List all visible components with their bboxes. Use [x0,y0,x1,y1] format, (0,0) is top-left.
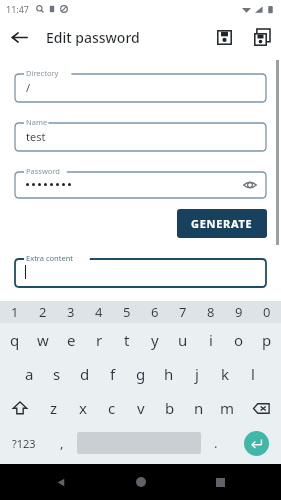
button[interactable]: g [127,357,155,391]
staticText: Edit password [46,28,205,47]
staticText: 3 [67,303,75,321]
button[interactable]: r [85,323,113,357]
button[interactable]: d [71,357,99,391]
button[interactable]: 8 [197,301,225,323]
button[interactable]: Recents [202,464,238,500]
button[interactable]: Name [14,116,267,152]
staticText: w [37,330,49,350]
staticText: 11:47 [6,3,30,15]
button[interactable]: Home [123,464,159,500]
button[interactable]: 3 [57,301,85,323]
button[interactable]: Save [205,18,243,56]
staticText: h [164,364,174,384]
button[interactable]: m [213,391,242,425]
button[interactable]: w [29,323,57,357]
button[interactable]: 5 [113,301,141,323]
button[interactable]: n [184,391,213,425]
staticText: f [110,364,116,384]
button[interactable]: Enter [231,425,281,461]
button[interactable]: o [225,323,253,357]
button[interactable]: Extra content [14,252,267,288]
button[interactable]: c [97,391,126,425]
button[interactable]: b [155,391,184,425]
staticText: r [96,330,103,350]
button[interactable]: . [201,425,231,461]
button[interactable]: Password [14,165,267,199]
staticText: , [60,434,64,452]
staticText: g [136,364,146,384]
button[interactable]: y [141,323,169,357]
button[interactable]: u [169,323,197,357]
staticText: . [214,434,218,452]
staticText: n [194,398,204,418]
staticText: 5 [123,303,131,321]
button[interactable]: a [15,357,43,391]
staticText: 6 [151,303,159,321]
staticText: ?123 [12,436,36,451]
staticText: 4 [95,303,103,321]
staticText: test [26,129,46,144]
button[interactable]: 7 [169,301,197,323]
button[interactable]: q [0,323,29,357]
button[interactable]: GENERATE [177,209,267,238]
staticText: a [25,364,34,384]
staticText: / [26,80,31,95]
staticText: x [79,398,87,418]
staticText: 9 [235,303,243,321]
staticText: 1 [11,303,19,321]
button[interactable]: v [126,391,155,425]
button[interactable]: l [239,357,267,391]
staticText: l [251,364,255,384]
staticText: e [67,330,76,350]
button[interactable]: Backspace [242,391,281,425]
button[interactable]: 0 [253,301,281,323]
button[interactable]: Directory [14,67,267,103]
staticText: Name [26,117,48,127]
button[interactable]: Shift [0,391,39,425]
staticText: b [165,398,175,418]
button[interactable]: h [155,357,183,391]
button[interactable]: Show password [241,176,259,194]
button[interactable]: 4 [85,301,113,323]
staticText: Directory [26,68,59,78]
staticText: u [178,330,188,350]
button[interactable]: e [57,323,85,357]
button[interactable]: 2 [29,301,57,323]
staticText: 7 [179,303,187,321]
button[interactable]: s [43,357,71,391]
staticText: o [234,330,244,350]
staticText: GENERATE [191,216,253,231]
staticText: q [10,330,20,350]
button[interactable]: ?123 [0,425,47,461]
staticText: Password [26,166,60,176]
button[interactable]: p [253,323,281,357]
staticText: 8 [207,303,215,321]
staticText: p [262,330,272,350]
staticText: c [108,398,116,418]
button[interactable]: z [39,391,68,425]
staticText: s [53,364,61,384]
button[interactable]: t [113,323,141,357]
button[interactable]: , [47,425,77,461]
staticText: k [221,364,230,384]
button[interactable]: 9 [225,301,253,323]
staticText: 2 [39,303,47,321]
button[interactable]: Save as [243,18,281,56]
staticText: j [195,364,199,384]
staticText: d [80,364,90,384]
button[interactable]: 6 [141,301,169,323]
staticText: i [209,330,213,350]
button[interactable]: 1 [0,301,29,323]
staticText: z [50,398,58,418]
button[interactable]: j [183,357,211,391]
button[interactable]: x [68,391,97,425]
staticText: Extra content [26,253,74,263]
button[interactable]: i [197,323,225,357]
staticText: t [124,330,130,350]
button[interactable]: f [99,357,127,391]
staticText: y [151,330,159,350]
button[interactable]: k [211,357,239,391]
button[interactable]: Back [0,18,38,56]
button[interactable]: Back [43,464,79,500]
